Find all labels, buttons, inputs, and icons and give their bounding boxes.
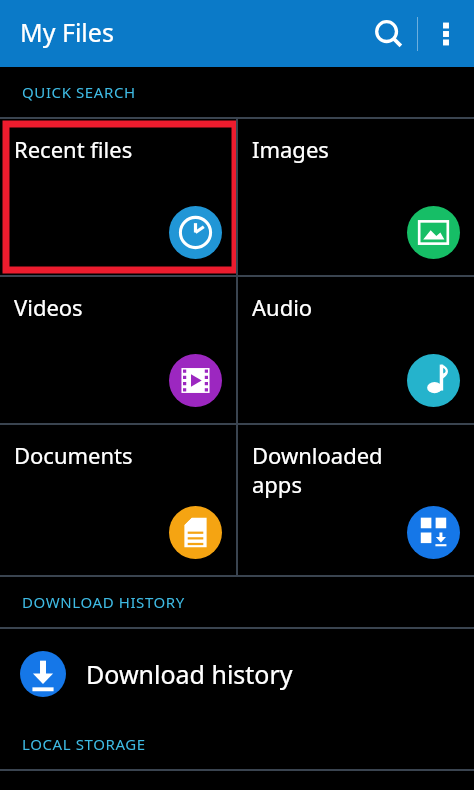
- button[interactable]: Documents: [0, 425, 236, 575]
- staticText: QUICK SEARCH: [22, 82, 136, 102]
- staticText: Images: [252, 134, 329, 164]
- button[interactable]: More options: [418, 6, 474, 62]
- staticText: LOCAL STORAGE: [22, 734, 146, 754]
- button[interactable]: Download history: [0, 629, 474, 719]
- staticText: Download history: [86, 657, 293, 691]
- button[interactable]: Recent files: [0, 119, 236, 275]
- staticText: Videos: [14, 292, 83, 322]
- staticText: My Files: [20, 15, 114, 49]
- staticText: Documents: [14, 440, 133, 470]
- button[interactable]: Search: [361, 6, 417, 62]
- button[interactable]: Images: [238, 119, 474, 275]
- button[interactable]: Audio: [238, 277, 474, 423]
- staticText: DOWNLOAD HISTORY: [22, 592, 185, 612]
- button[interactable]: Videos: [0, 277, 236, 423]
- staticText: Audio: [252, 292, 313, 322]
- staticText: Downloaded apps: [252, 440, 383, 499]
- staticText: Recent files: [14, 134, 133, 164]
- button[interactable]: Downloaded apps: [238, 425, 474, 575]
